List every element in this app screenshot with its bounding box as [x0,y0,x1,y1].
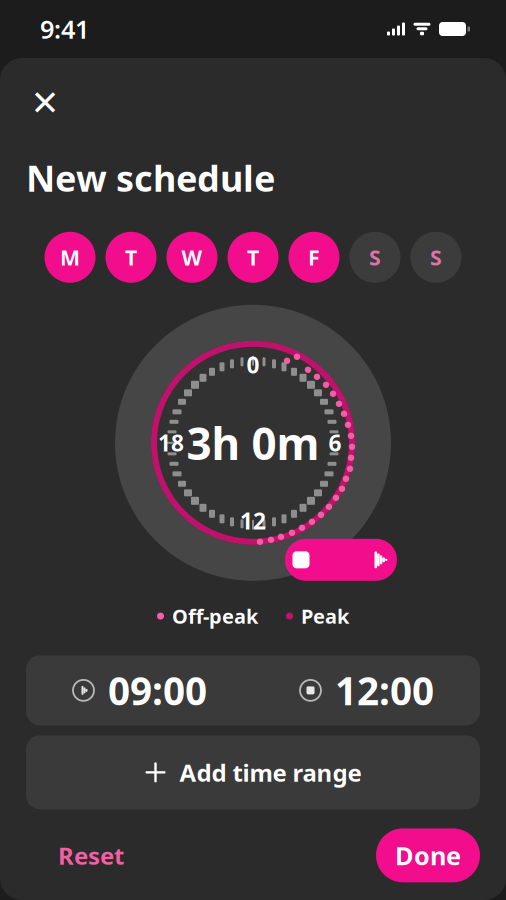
staticText: Done [395,838,461,872]
staticText: 09:00 [108,665,207,716]
button[interactable]: T [227,232,278,283]
staticText: T [125,243,137,271]
staticText: S [430,243,442,271]
staticText: 12 [240,506,266,536]
button[interactable]: Close [22,80,68,126]
button[interactable]: S [410,232,461,283]
staticText: 0 [246,350,259,380]
staticText: Off-peak [172,603,258,629]
staticText: S [369,243,381,271]
staticText: 3h 0m [186,414,319,472]
staticText: M [60,243,80,271]
button[interactable]: M [44,232,95,283]
staticText: Add time range [179,756,361,788]
button[interactable]: 12:00 [253,655,480,725]
staticText: T [247,243,259,271]
button[interactable]: F [288,232,339,283]
button[interactable]: S [349,232,400,283]
staticText: 18 [158,428,184,458]
staticText: ✕ [30,83,59,123]
staticText: F [308,243,320,271]
staticText: 9:41 [40,12,89,46]
staticText: W [181,243,202,271]
staticText: Reset [58,839,124,871]
button[interactable]: Done [376,828,480,882]
button[interactable]: Reset [46,827,136,883]
staticText: 6 [328,428,341,458]
staticText: New schedule [26,154,275,202]
button[interactable]: W [166,232,217,283]
button[interactable]: Add time range [26,735,480,809]
staticText: 12:00 [335,665,434,716]
button[interactable]: 09:00 [26,655,253,725]
button[interactable]: T [105,232,156,283]
staticText: Peak [301,603,349,629]
